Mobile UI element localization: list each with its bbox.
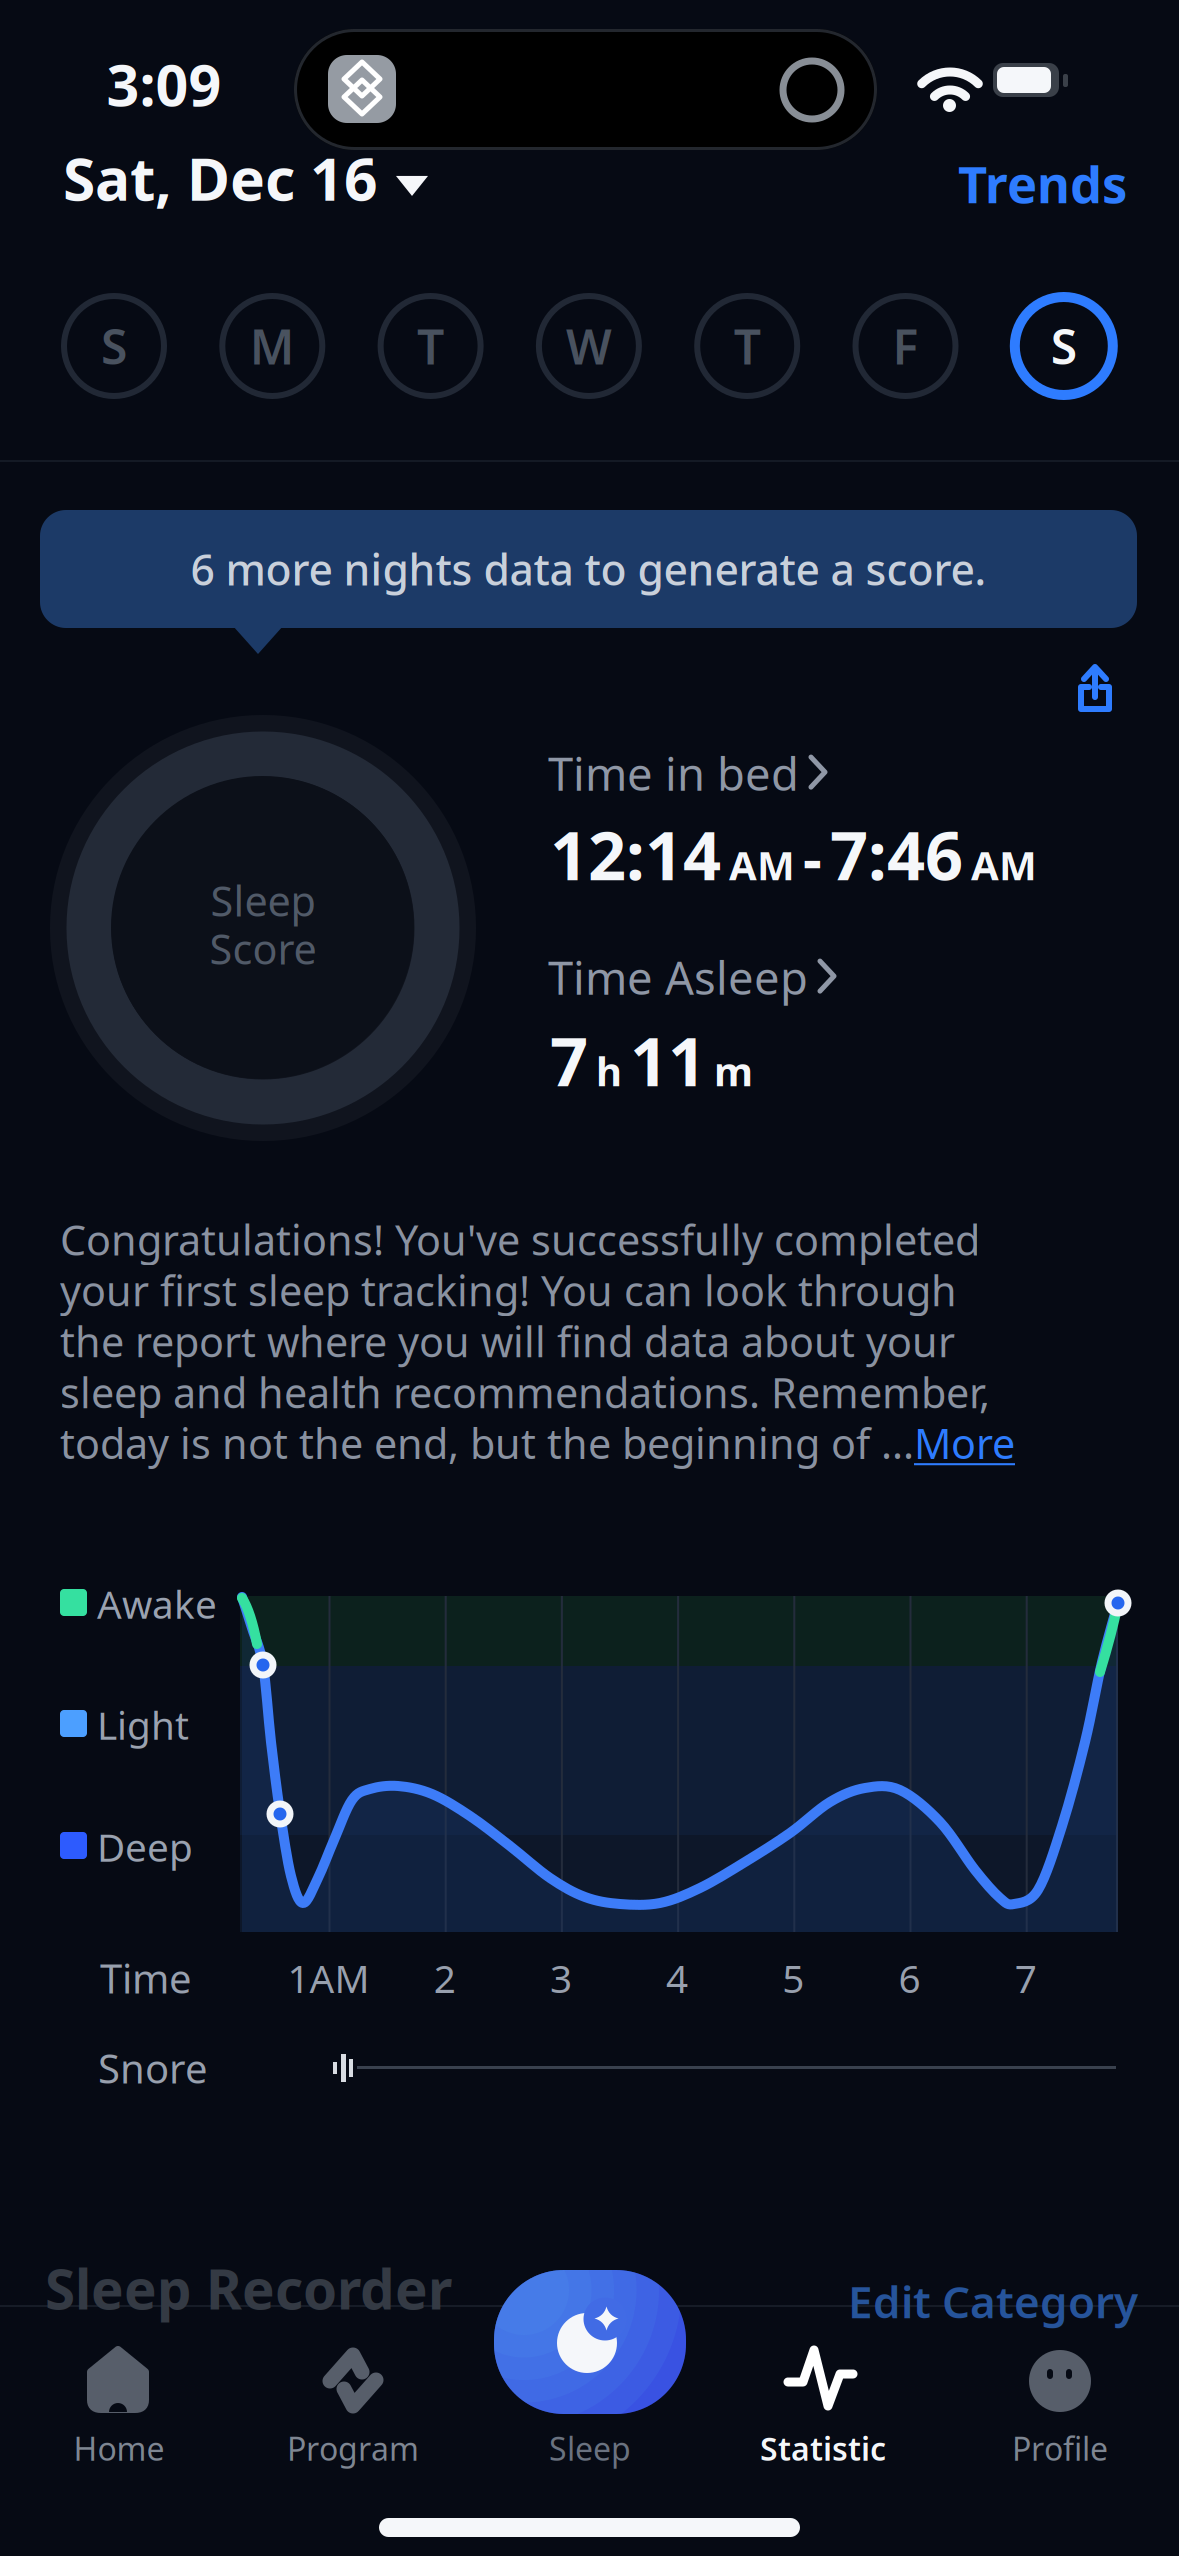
button[interactable]: Profile (960, 2350, 1160, 2484)
staticText: 4 (666, 1952, 688, 2004)
staticText: Sleep Recorder (45, 2252, 452, 2325)
button[interactable]: Home (19, 2350, 219, 2484)
staticText: 5 (782, 1952, 804, 2004)
staticText: m (714, 1044, 753, 1097)
button[interactable]: Trends (958, 150, 1127, 217)
staticText: AM (729, 838, 795, 891)
staticText: Score (209, 921, 316, 976)
staticText: 6 more nights data to generate a score. (190, 541, 986, 597)
staticText: Home (73, 2427, 164, 2469)
staticText: Profile (1012, 2427, 1108, 2469)
staticText: 7 (550, 1016, 588, 1104)
button[interactable] (494, 2270, 686, 2414)
button[interactable]: Time Asleep (548, 947, 836, 1007)
button[interactable]: Program (243, 2350, 463, 2484)
staticText: 12:14 (550, 810, 721, 898)
staticText: F (892, 314, 918, 378)
button[interactable]: Statistic (713, 2350, 933, 2484)
staticText: 1AM (287, 1952, 369, 2004)
staticText: Edit Category (848, 2272, 1138, 2330)
staticText: S (1051, 314, 1077, 378)
staticText: Sleep (210, 873, 315, 928)
button[interactable]: Time in bed (548, 743, 827, 803)
button[interactable]: S (62, 294, 166, 398)
staticText: Trends (958, 150, 1127, 217)
staticText: Sat, Dec 16 (63, 139, 378, 217)
button[interactable]: T (695, 294, 799, 398)
button[interactable]: Sat, Dec 16 (63, 139, 428, 217)
button[interactable]: Edit Category (848, 2272, 1138, 2330)
staticText: Light (97, 1699, 189, 1750)
staticText: Deep (97, 1821, 193, 1872)
button[interactable] (1075, 662, 1115, 714)
staticText: M (250, 314, 295, 378)
staticText: S (101, 314, 127, 378)
staticText: today is not the end, but the beginning … (60, 1416, 914, 1470)
button[interactable]: More (914, 1416, 1015, 1470)
staticText: the report where you will find data abou… (60, 1314, 955, 1369)
staticText: 11 (630, 1016, 706, 1104)
button[interactable]: F (853, 294, 957, 398)
staticText: Time (100, 1951, 192, 2004)
staticText: Program (287, 2427, 419, 2469)
button[interactable]: W (537, 294, 641, 398)
staticText: Awake (97, 1578, 217, 1629)
staticText: T (417, 314, 444, 378)
staticText: 7:46 (830, 810, 963, 898)
staticText: T (734, 314, 761, 378)
button[interactable]: Sleep Recorder (45, 2252, 452, 2325)
staticText: Sleep (549, 2427, 631, 2469)
staticText: 2 (434, 1952, 456, 2004)
button[interactable]: S (1012, 294, 1116, 398)
staticText: sleep and health recommendations. Rememb… (60, 1365, 990, 1420)
staticText: 6 (898, 1952, 920, 2004)
staticText: More (914, 1416, 1015, 1470)
staticText: 3:09 (106, 46, 221, 122)
button[interactable]: T (379, 294, 483, 398)
staticText: - (803, 818, 822, 896)
staticText: W (566, 314, 612, 378)
staticText: 3 (550, 1952, 572, 2004)
staticText: AM (971, 838, 1037, 891)
staticText: Congratulations! You've successfully com… (60, 1212, 980, 1267)
button[interactable]: M (220, 294, 324, 398)
staticText: Statistic (760, 2427, 886, 2469)
staticText: Time in bed (548, 743, 799, 803)
staticText: your first sleep tracking! You can look … (60, 1263, 957, 1318)
staticText: Snore (98, 2041, 208, 2094)
staticText: h (596, 1044, 622, 1097)
staticText: 7 (1015, 1952, 1037, 2004)
staticText: Time Asleep (548, 947, 808, 1007)
